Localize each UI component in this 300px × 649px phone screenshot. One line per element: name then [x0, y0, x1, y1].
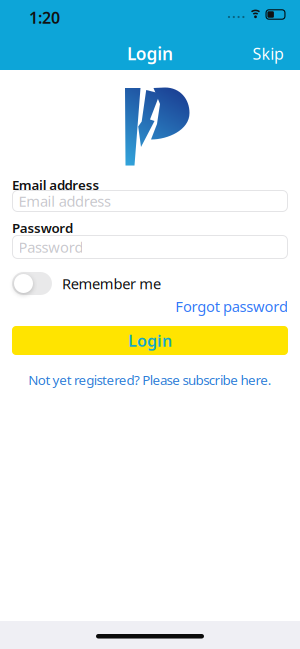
- staticText: 1:20: [29, 7, 60, 28]
- staticText: Skip: [253, 43, 284, 64]
- staticText: Login: [128, 330, 172, 351]
- button[interactable]: Remember me: [12, 272, 161, 295]
- staticText: Not yet registered? Please subscribe her…: [28, 371, 272, 389]
- button[interactable]: Forgot password: [175, 296, 288, 316]
- staticText: Password: [18, 237, 83, 257]
- button[interactable]: Login: [12, 326, 288, 355]
- button[interactable]: Skip: [253, 43, 284, 64]
- staticText: Remember me: [62, 274, 161, 293]
- button[interactable]: Not yet registered? Please subscribe her…: [0, 371, 300, 389]
- staticText: Password: [12, 219, 73, 237]
- staticText: Email address: [12, 176, 99, 194]
- staticText: Login: [127, 42, 173, 65]
- staticText: Email address: [18, 191, 111, 211]
- staticText: Forgot password: [175, 296, 288, 316]
